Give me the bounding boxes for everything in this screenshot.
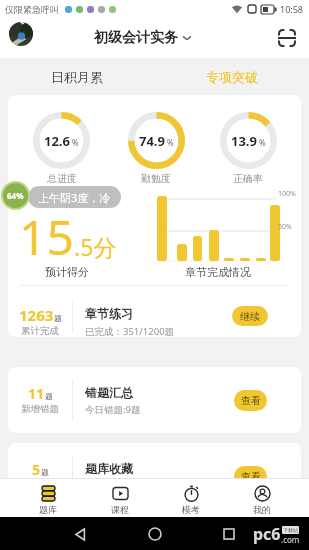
button[interactable]: 日积月累 [0, 58, 154, 95]
staticText: 我的 [253, 504, 271, 515]
staticText: 1263 [19, 305, 54, 325]
button[interactable] [278, 29, 296, 47]
staticText: 课程 [111, 504, 129, 515]
staticText: 100% [278, 189, 296, 199]
staticText: 上午阴3度，冷 [38, 190, 111, 205]
staticText: pc6 [253, 523, 281, 545]
button[interactable]: 查看 [234, 390, 267, 411]
staticText: 15 [19, 204, 74, 269]
staticText: 下载站 [283, 527, 298, 533]
button[interactable]: 模考 [155, 479, 226, 517]
staticText: 10:58 [280, 3, 304, 15]
staticText: 64% [7, 190, 24, 201]
staticText: 13.9 [231, 132, 257, 150]
staticText: % [257, 137, 266, 148]
button[interactable]: 5 [8, 443, 301, 509]
staticText: 初级会计实务 [94, 29, 178, 47]
staticText: 预计得分 [27, 265, 107, 279]
button[interactable]: 题库 [12, 479, 84, 517]
button[interactable]: 课程 [84, 479, 155, 517]
staticText: 今日收藏:3题 [85, 479, 141, 492]
staticText: 模考 [182, 504, 200, 515]
staticText: 新增收藏 [21, 479, 59, 491]
staticText: 总进度 [22, 172, 102, 185]
staticText: 题库收藏 [85, 461, 133, 476]
staticText: 专项突破 [206, 69, 258, 85]
staticText: 章节练习 [85, 306, 133, 321]
button[interactable]: 11 [8, 367, 301, 433]
staticText: % [70, 137, 79, 148]
staticText: 已完成：351/1200题 [85, 325, 175, 337]
button[interactable]: 专项突破 [154, 58, 309, 95]
staticText: .5分 [74, 231, 117, 262]
staticText: 章节完成情况 [185, 265, 251, 279]
button[interactable]: 继续 [232, 306, 268, 326]
button[interactable]: 初级会计实务 [94, 29, 191, 47]
staticText: 12.6 [44, 132, 70, 150]
staticText: 查看 [241, 470, 261, 483]
staticText: 题 [41, 467, 49, 477]
staticText: 正确率 [208, 172, 288, 185]
staticText: 错题汇总 [85, 385, 133, 400]
staticText: 新增错题 [21, 403, 59, 415]
staticText: % [165, 137, 174, 148]
button[interactable]: 我的 [226, 479, 297, 517]
staticText: 继续 [240, 310, 260, 323]
staticText: 题 [54, 313, 62, 323]
staticText: 查看 [241, 394, 261, 407]
staticText: 题库 [39, 504, 57, 515]
staticText: .com [281, 534, 300, 545]
staticText: 50% [278, 222, 292, 232]
button[interactable] [74, 528, 87, 541]
staticText: 仅限紧急呼叫 [5, 4, 59, 15]
staticText: 日积月累 [51, 69, 103, 85]
staticText: 今日错题:9题 [85, 403, 141, 416]
staticText: 累计完成 [21, 325, 59, 337]
button[interactable] [148, 527, 162, 541]
button[interactable]: 查看 [234, 466, 267, 487]
staticText: 题 [45, 391, 53, 401]
button[interactable] [9, 22, 33, 46]
staticText: 勤勉度 [116, 172, 196, 185]
staticText: 11 [28, 384, 45, 403]
staticText: 74.9 [139, 132, 165, 150]
staticText: 5 [32, 460, 41, 479]
button[interactable] [223, 528, 235, 540]
